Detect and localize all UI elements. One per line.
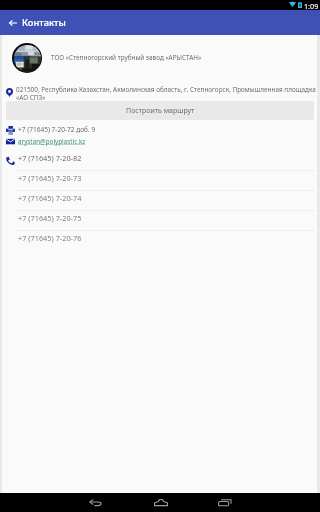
staticText: ТОО «Степногорский трубный завод «АРЫСТА… [51, 53, 202, 62]
button[interactable]: arystan@polyplastic.kz [0, 135, 320, 148]
staticText: +7 (71645) 7-20-73 [18, 173, 82, 183]
staticText: +7 (71645) 7-20-75 [18, 213, 82, 223]
staticText: +7 (71645) 7-20-74 [18, 193, 82, 203]
staticText: arystan@polyplastic.kz [18, 137, 86, 146]
staticText: 1:09 [304, 1, 319, 11]
staticText: +7 (71645) 7-20-72 доб. 9 [18, 125, 96, 134]
staticText: Построить маршрут [126, 106, 195, 116]
button[interactable]: Home [148, 493, 173, 512]
staticText: Контакты [22, 16, 66, 29]
button[interactable]: Recent apps [212, 493, 238, 512]
button[interactable]: +7 (71645) 7-20-82 [0, 150, 320, 170]
button[interactable]: +7 (71645) 7-20-72 доб. 9 [0, 123, 320, 137]
staticText: 021500, Республика Казахстан, Акмолинска… [16, 85, 320, 102]
button[interactable]: +7 (71645) 7-20-74 [0, 190, 320, 210]
button[interactable]: Back [83, 493, 108, 512]
button[interactable]: +7 (71645) 7-20-73 [0, 170, 320, 190]
staticText: +7 (71645) 7-20-76 [18, 233, 82, 243]
button[interactable]: +7 (71645) 7-20-76 [0, 230, 320, 250]
button[interactable]: Back [4, 14, 21, 31]
button[interactable]: +7 (71645) 7-20-75 [0, 210, 320, 230]
button[interactable]: Построить маршрут [6, 101, 314, 120]
staticText: +7 (71645) 7-20-82 [18, 153, 82, 163]
button[interactable]: Company photo [12, 43, 42, 73]
